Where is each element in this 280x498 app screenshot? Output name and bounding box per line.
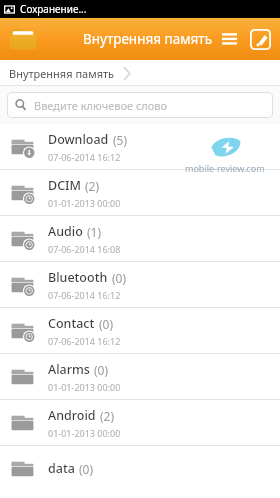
staticText: (5): [113, 132, 128, 148]
staticText: Введите ключевое слово: [34, 98, 168, 113]
button[interactable]: Внутренняя память: [9, 66, 115, 81]
staticText: (0): [112, 270, 127, 286]
staticText: Download: [48, 131, 109, 148]
button[interactable]: data: [0, 446, 280, 491]
button[interactable]: Alarms: [0, 354, 280, 399]
button[interactable]: DCIM: [0, 170, 280, 215]
staticText: DCIM: [48, 177, 81, 194]
button[interactable]: Storage: [6, 22, 40, 56]
staticText: (2): [85, 178, 100, 194]
staticText: Сохранение...: [20, 2, 87, 16]
staticText: Contact: [48, 315, 95, 332]
staticText: Bluetooth: [48, 269, 108, 286]
button[interactable]: Audio: [0, 216, 280, 261]
button[interactable]: Bluetooth: [0, 262, 280, 307]
staticText: Android: [48, 407, 96, 424]
staticText: Alarms: [48, 361, 90, 378]
button[interactable]: Android: [0, 400, 280, 445]
staticText: (0): [99, 316, 114, 332]
staticText: 07-06-2014 16:12: [48, 151, 121, 163]
staticText: (0): [94, 362, 109, 378]
staticText: Audio: [48, 223, 83, 240]
staticText: (1): [87, 224, 102, 240]
staticText: 07-06-2014 16:12: [48, 289, 121, 301]
button[interactable]: Введите ключевое слово: [7, 92, 273, 118]
staticText: (2): [100, 408, 115, 424]
button[interactable]: Menu: [216, 26, 242, 52]
staticText: data: [48, 460, 75, 477]
staticText: 07-06-2014 16:08: [48, 243, 121, 255]
staticText: 01-01-2013 00:00: [48, 381, 121, 393]
staticText: 01-01-2013 00:00: [48, 427, 121, 439]
staticText: (0): [79, 461, 94, 477]
button[interactable]: Edit: [246, 25, 274, 53]
staticText: Внутренняя память: [83, 30, 213, 48]
staticText: 01-01-2013 00:00: [48, 197, 121, 209]
staticText: 07-06-2014 16:12: [48, 335, 121, 347]
button[interactable]: Download: [0, 124, 280, 169]
staticText: mobile-review.com: [185, 162, 265, 174]
button[interactable]: Contact: [0, 308, 280, 353]
staticText: Внутренняя память: [9, 66, 115, 81]
